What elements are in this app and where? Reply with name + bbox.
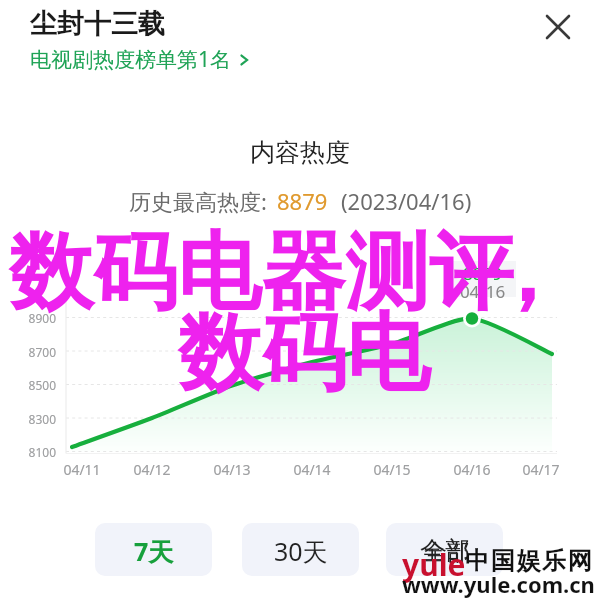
staticText: www.yule.com.cn <box>402 569 600 599</box>
staticText: 04/16 <box>447 460 497 479</box>
staticText: 8500 <box>16 377 56 393</box>
staticText: 04/17 <box>516 460 566 479</box>
staticText: 电视剧热度榜单第1名 <box>30 45 232 74</box>
staticText: yule <box>402 544 522 585</box>
staticText: 数码电 <box>178 301 578 407</box>
staticText: 8900 <box>16 310 56 326</box>
staticText: 历史最高热度: <box>129 186 267 216</box>
staticText: 8300 <box>16 411 56 427</box>
staticText: 30天 <box>274 534 328 568</box>
button[interactable]: 电视剧热度榜单第1名 <box>30 45 251 74</box>
staticText: 8700 <box>16 344 56 360</box>
staticText: 7天 <box>134 534 174 568</box>
staticText: 04/15 <box>367 460 417 479</box>
staticText: 8879 <box>277 186 328 216</box>
staticText: (2023/04/16) <box>341 186 472 216</box>
staticText: 全部 <box>420 535 470 566</box>
staticText: 8879 <box>449 262 516 285</box>
staticText: 全部 <box>424 538 470 567</box>
staticText: 04/13 <box>207 460 257 479</box>
staticText: ， <box>484 220 600 326</box>
button[interactable]: Close <box>530 0 586 55</box>
staticText: 04/11 <box>57 460 107 479</box>
staticText: 04/14 <box>287 460 337 479</box>
button[interactable]: 30天 <box>242 523 359 576</box>
staticText: 数码电器测评 <box>9 220 600 326</box>
staticText: 尘封十三载 <box>30 7 165 41</box>
button[interactable]: 7天 <box>95 523 212 576</box>
staticText: 04/12 <box>127 460 177 479</box>
staticText: 8100 <box>16 444 56 460</box>
button[interactable]: 全部 <box>386 523 503 576</box>
staticText: 04/16 <box>449 280 516 303</box>
staticText: 内容热度 <box>0 137 600 168</box>
staticText: 中国娱乐网 <box>465 546 600 576</box>
